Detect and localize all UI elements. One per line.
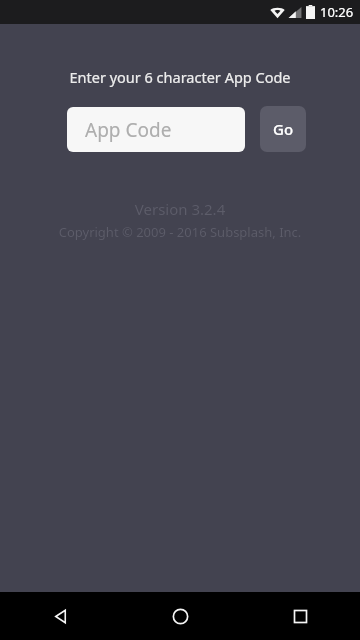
button[interactable]: Recent apps (240, 592, 360, 640)
staticText: Enter your 6 character App Code (0, 67, 360, 87)
button[interactable]: Go (260, 106, 306, 152)
button[interactable]: App Code (67, 107, 245, 152)
button[interactable]: Back (0, 592, 120, 640)
staticText: App Code (85, 117, 172, 143)
button[interactable]: Home (120, 592, 240, 640)
staticText: Copyright © 2009 - 2016 Subsplash, Inc. (0, 223, 360, 241)
staticText: 10:26 (320, 3, 354, 21)
staticText: Version 3.2.4 (0, 199, 360, 219)
staticText: Go (273, 119, 294, 139)
